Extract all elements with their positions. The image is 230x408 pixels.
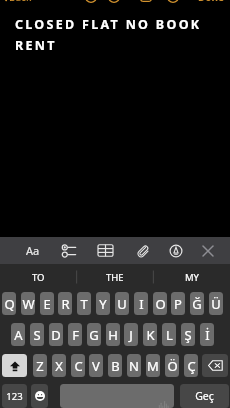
button[interactable]: P <box>171 292 185 315</box>
staticText: Geç <box>195 389 214 403</box>
staticText: F <box>72 326 79 344</box>
button[interactable]: CLOSED FLAT NO BOOK RENT <box>15 16 209 54</box>
button[interactable]: Shift <box>2 354 27 377</box>
staticText: Y <box>99 295 107 313</box>
button[interactable]: G <box>87 323 101 346</box>
staticText: G <box>89 326 99 344</box>
staticText: X <box>55 357 63 375</box>
staticText: L <box>166 326 173 344</box>
staticText: Ö <box>167 357 178 375</box>
staticText: N <box>129 357 139 375</box>
button[interactable]: T <box>77 292 91 315</box>
button[interactable]: J <box>124 323 138 346</box>
staticText: Back <box>9 0 32 4</box>
staticText: Ş <box>184 326 192 344</box>
button[interactable]: İ <box>200 323 214 346</box>
staticText: O <box>155 295 166 313</box>
staticText: TO <box>32 271 45 284</box>
button[interactable]: Redo <box>105 0 122 5</box>
button[interactable]: D <box>49 323 63 346</box>
button[interactable]: C <box>71 354 85 377</box>
staticText: J <box>129 326 133 344</box>
button[interactable]: THE <box>76 264 153 290</box>
button[interactable]: R <box>58 292 72 315</box>
staticText: THE <box>106 271 124 284</box>
button[interactable]: MY <box>153 264 230 290</box>
button[interactable]: B <box>108 354 122 377</box>
button[interactable]: Z <box>33 354 47 377</box>
button[interactable]: F <box>68 323 82 346</box>
staticText: S <box>33 326 41 344</box>
staticText: E <box>43 295 51 313</box>
staticText: 123 <box>6 390 23 403</box>
button[interactable]: M <box>146 354 160 377</box>
button[interactable]: Emoji <box>31 384 48 408</box>
staticText: Ç <box>187 357 196 375</box>
staticText: U <box>117 295 127 313</box>
staticText: A <box>14 326 23 344</box>
button[interactable]: Close keyboard <box>194 237 221 264</box>
staticText: B <box>111 357 120 375</box>
button[interactable]: Y <box>96 292 110 315</box>
button[interactable]: Back <box>0 0 32 5</box>
button[interactable]: Text format <box>19 237 46 264</box>
button[interactable]: Markup <box>162 237 189 264</box>
staticText: K <box>146 326 155 344</box>
staticText: Z <box>36 357 44 375</box>
button[interactable]: I <box>134 292 148 315</box>
staticText: Done <box>198 0 225 4</box>
button[interactable]: E <box>40 292 54 315</box>
button[interactable]: S <box>30 323 44 346</box>
staticText: W <box>22 295 35 313</box>
staticText: Ğ <box>192 295 202 313</box>
staticText: C <box>74 357 83 375</box>
staticText: M <box>147 357 159 375</box>
button[interactable]: 123 <box>2 384 27 408</box>
staticText: I <box>139 295 144 313</box>
button[interactable]: Geç <box>180 384 229 408</box>
staticText: H <box>108 326 118 344</box>
button[interactable]: V <box>89 354 103 377</box>
button[interactable]: Done <box>198 0 225 5</box>
staticText: Q <box>4 295 15 313</box>
button[interactable]: TO <box>0 264 76 290</box>
button[interactable]: Backspace <box>202 354 228 377</box>
staticText: İ <box>205 326 210 344</box>
button[interactable]: Camera <box>137 0 154 5</box>
button[interactable]: A <box>11 323 25 346</box>
staticText: Aa <box>26 243 40 258</box>
staticText: Ü <box>211 295 221 313</box>
button[interactable]: W <box>21 292 35 315</box>
button[interactable]: X <box>52 354 66 377</box>
button[interactable]: K <box>143 323 157 346</box>
button[interactable]: N <box>127 354 141 377</box>
button[interactable]: L <box>162 323 176 346</box>
button[interactable]: Ü <box>209 292 223 315</box>
button[interactable]: Checklist <box>56 237 83 264</box>
staticText: D <box>51 326 61 344</box>
button[interactable]: Ş <box>181 323 195 346</box>
button[interactable]: H <box>106 323 120 346</box>
staticText: R <box>61 295 70 313</box>
button[interactable]: Q <box>2 292 16 315</box>
staticText: P <box>174 295 182 313</box>
button[interactable]: Ğ <box>190 292 204 315</box>
button[interactable]: Ç <box>184 354 198 377</box>
button[interactable]: Table <box>92 237 119 264</box>
staticText: V <box>92 357 100 375</box>
button[interactable]: U <box>115 292 129 315</box>
button[interactable]: O <box>153 292 167 315</box>
staticText: MY <box>185 271 199 284</box>
button[interactable]: More <box>164 0 181 5</box>
staticText: T <box>80 295 88 313</box>
button[interactable]: Attach <box>129 237 156 264</box>
button[interactable]: Space <box>60 384 174 408</box>
button[interactable]: Ö <box>165 354 179 377</box>
button[interactable]: Undo <box>82 0 99 5</box>
